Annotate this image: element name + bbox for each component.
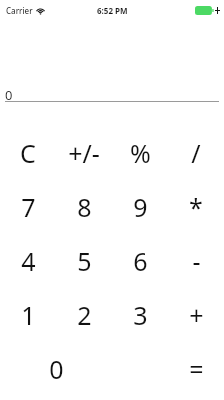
staticText: / (191, 136, 201, 170)
staticText: 2 (77, 298, 92, 332)
staticText: 7 (21, 190, 36, 224)
staticText: 3 (133, 298, 148, 332)
staticText: +/- (68, 136, 100, 170)
staticText: 6 (133, 244, 148, 278)
other: Wi-Fi signal (36, 7, 45, 15)
button[interactable]: 8 (56, 180, 112, 234)
button[interactable]: - (168, 234, 224, 288)
staticText: 4 (21, 244, 36, 278)
staticText: C (20, 136, 36, 170)
button[interactable]: + (168, 288, 224, 342)
button[interactable]: 3 (112, 288, 168, 342)
staticText: % (130, 136, 151, 170)
staticText: 6:52 PM (97, 5, 128, 16)
staticText: + (189, 298, 204, 332)
staticText: = (189, 352, 204, 386)
button[interactable]: 0 (5, 86, 219, 101)
staticText: 8 (77, 190, 92, 224)
button[interactable]: C (0, 126, 56, 180)
staticText: 0 (5, 86, 13, 101)
button[interactable]: 6 (112, 234, 168, 288)
staticText: - (192, 244, 201, 278)
button[interactable]: 9 (112, 180, 168, 234)
button[interactable]: 4 (0, 234, 56, 288)
staticText: 1 (21, 298, 36, 332)
button[interactable]: 5 (56, 234, 112, 288)
button[interactable]: = (168, 342, 224, 396)
button[interactable]: +/- (56, 126, 112, 180)
button[interactable]: / (168, 126, 224, 180)
button[interactable]: 1 (0, 288, 56, 342)
other: Battery charging (195, 6, 214, 15)
staticText: 5 (77, 244, 92, 278)
staticText: 9 (133, 190, 148, 224)
button[interactable]: 0 (0, 342, 112, 396)
staticText: 0 (49, 352, 64, 386)
button[interactable]: * (168, 180, 224, 234)
button[interactable]: 2 (56, 288, 112, 342)
staticText: Carrier (6, 5, 33, 16)
staticText: * (189, 190, 203, 224)
button[interactable]: % (112, 126, 168, 180)
button[interactable]: 7 (0, 180, 56, 234)
